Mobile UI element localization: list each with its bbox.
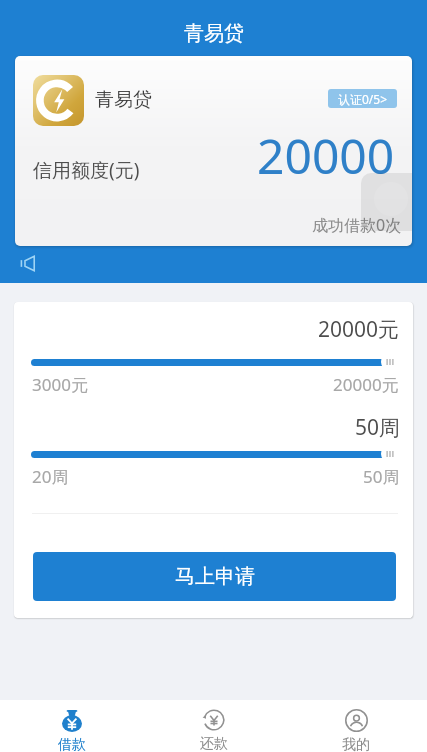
staticText: 青易贷 <box>184 21 244 46</box>
staticText: 借款 <box>58 736 86 752</box>
button[interactable]: 青易贷 <box>15 56 412 246</box>
staticText: 3000元 <box>32 373 88 396</box>
button[interactable]: 借款 <box>0 700 143 752</box>
staticText: 20周 <box>32 465 69 488</box>
button[interactable]: Loan amount slider <box>381 353 399 371</box>
staticText: 50周 <box>363 465 400 488</box>
button[interactable]: 马上申请 <box>33 552 396 601</box>
staticText: 信用额度(元) <box>33 157 140 183</box>
staticText: 还款 <box>200 735 228 752</box>
button[interactable]: 认证0/5> <box>328 89 397 108</box>
staticText: 20000 <box>257 123 395 188</box>
staticText: 青易贷 <box>95 88 152 112</box>
staticText: 成功借款0次 <box>312 214 402 236</box>
staticText: 20000元 <box>318 315 400 344</box>
button[interactable]: 还款 <box>143 700 285 752</box>
staticText: 马上申请 <box>175 564 255 589</box>
button[interactable]: 我的 <box>285 700 427 752</box>
staticText: 我的 <box>342 736 370 752</box>
staticText: 20000元 <box>333 373 399 396</box>
staticText: 50周 <box>355 413 401 442</box>
button[interactable]: Announcements <box>16 252 38 274</box>
staticText: 认证0/5> <box>338 91 388 107</box>
button[interactable]: Loan term slider <box>381 445 399 463</box>
